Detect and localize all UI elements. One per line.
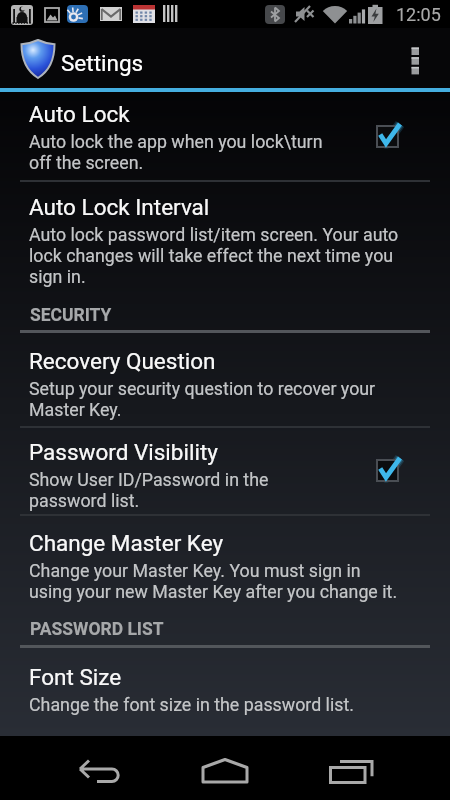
staticText: Show User ID/Password in the password li… bbox=[29, 469, 419, 511]
button[interactable] bbox=[369, 450, 409, 490]
staticText: Change the font size in the password lis… bbox=[29, 694, 429, 715]
button[interactable] bbox=[64, 736, 136, 800]
staticText: PASSWORD LIST bbox=[30, 619, 164, 640]
button[interactable] bbox=[314, 736, 386, 800]
button[interactable] bbox=[0, 428, 450, 514]
button[interactable] bbox=[0, 92, 450, 181]
staticText: Recovery Question bbox=[29, 348, 216, 374]
button[interactable] bbox=[369, 116, 409, 156]
button[interactable] bbox=[189, 736, 261, 800]
staticText: Change your Master Key. You must sign in… bbox=[29, 560, 429, 602]
staticText: Auto Lock Interval bbox=[29, 194, 210, 220]
staticText: Font Size bbox=[29, 664, 122, 690]
staticText: Auto Lock bbox=[29, 101, 130, 127]
staticText: Auto lock the app when you lock\turn off… bbox=[29, 131, 419, 173]
staticText: Password Visibility bbox=[29, 439, 218, 465]
button[interactable] bbox=[0, 516, 450, 612]
button[interactable] bbox=[0, 649, 450, 736]
button[interactable] bbox=[396, 38, 436, 82]
staticText: 12:05 bbox=[396, 4, 441, 25]
button[interactable] bbox=[0, 182, 450, 297]
staticText: Change Master Key bbox=[29, 530, 224, 556]
button[interactable] bbox=[0, 333, 450, 426]
staticText: SECURITY bbox=[30, 305, 112, 326]
staticText: Settings bbox=[61, 50, 144, 76]
staticText: Setup your security question to recover … bbox=[29, 378, 429, 420]
staticText: Auto lock password list/item screen. You… bbox=[29, 224, 429, 287]
